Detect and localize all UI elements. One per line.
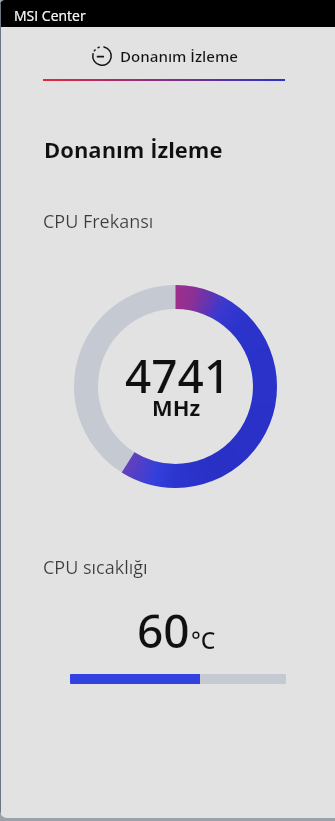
staticText: MHz	[152, 392, 201, 422]
staticText: CPU sıcaklığı	[43, 555, 148, 580]
other: Hardware monitor	[92, 46, 112, 66]
staticText: 4741	[125, 344, 231, 407]
staticText: 60	[137, 599, 190, 662]
staticText: Donanım İzleme	[44, 134, 223, 164]
staticText: Donanım İzleme	[120, 46, 238, 66]
staticText: °C	[191, 624, 216, 655]
staticText: MSI Center	[14, 6, 86, 25]
button[interactable]	[70, 674, 286, 684]
button[interactable]: Hardware monitor	[0, 44, 332, 68]
staticText: CPU Frekansı	[43, 209, 154, 234]
